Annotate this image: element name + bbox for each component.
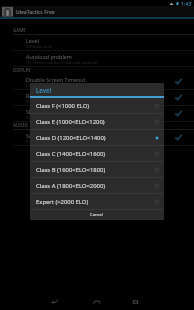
button[interactable]: Rotate board <box>0 90 194 106</box>
button[interactable]: Class B (1600<ELO<1800) <box>30 162 164 177</box>
staticText: Disable Screen Timeout <box>26 76 86 83</box>
staticText: Class B (1600<ELO<1800) <box>36 166 154 174</box>
staticText: Difficulty level <box>26 44 53 49</box>
button[interactable]: Sound <box>0 130 194 146</box>
staticText: Show coordinates <box>26 108 71 115</box>
staticText: Enable sound <box>26 139 52 144</box>
button[interactable]: Expert (>2000 ELO) <box>30 194 164 209</box>
staticText: Class E (1000<ELO<1200) <box>36 118 154 126</box>
staticText: Disable screen timeout <box>26 83 70 88</box>
staticText: Autoload problem <box>26 53 72 60</box>
staticText: Class D (1200<ELO<1400) <box>36 134 154 142</box>
button[interactable]: Class D (1200<ELO<1400) <box>30 130 164 145</box>
button[interactable]: Show coordinates <box>0 106 194 122</box>
staticText: Rotate board for black <box>26 99 68 104</box>
staticText: Level <box>26 37 39 44</box>
button[interactable]: Home <box>88 293 105 310</box>
staticText: AUDIO <box>13 122 28 128</box>
staticText: 1:43 <box>181 0 192 6</box>
button[interactable]: Class E (1000<ELO<1200) <box>30 114 164 129</box>
button[interactable]: Recents <box>127 293 144 310</box>
button[interactable]: Class A (1800<ELO<2000) <box>30 178 164 193</box>
button[interactable]: Class C (1400<ELO<1600) <box>30 146 164 161</box>
staticText: Cancel <box>90 212 104 218</box>
staticText: Show board coordinates <box>26 115 72 120</box>
staticText: Sound <box>26 132 43 139</box>
staticText: On correct solution load next problem <box>26 60 98 65</box>
staticText: Expert (>2000 ELO) <box>36 198 154 206</box>
staticText: IdeaTactics Free <box>16 8 55 15</box>
staticText: Class C (1400<ELO<1600) <box>36 150 154 158</box>
button[interactable]: Disable Screen Timeout <box>0 74 194 90</box>
button[interactable]: Class F (<1000 ELO) <box>30 98 164 113</box>
staticText: GAME <box>13 27 26 33</box>
button[interactable]: Cancel <box>30 210 164 220</box>
staticText: Class A (1800<ELO<2000) <box>36 182 154 190</box>
button[interactable]: Level <box>0 35 194 51</box>
staticText: Level <box>36 86 52 95</box>
staticText: DISPLAY <box>13 67 32 73</box>
button[interactable]: Back <box>46 293 63 310</box>
staticText: Rotate board <box>26 92 60 99</box>
button[interactable]: Autoload problem <box>0 51 194 67</box>
staticText: Class F (<1000 ELO) <box>36 102 154 110</box>
